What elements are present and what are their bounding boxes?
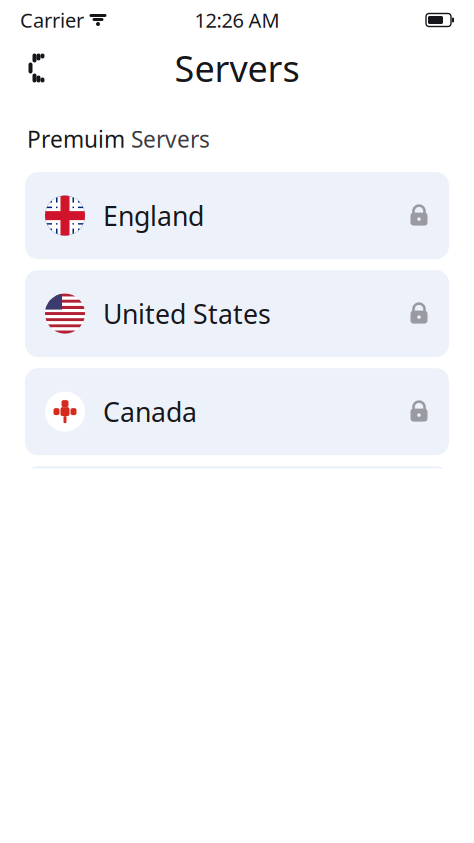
- button[interactable]: United States: [25, 270, 449, 357]
- staticText: Servers: [174, 44, 299, 92]
- staticText: Carrier: [20, 7, 84, 33]
- staticText: Servers: [131, 124, 210, 154]
- staticText: Canada: [103, 394, 197, 429]
- staticText: United States: [103, 296, 271, 331]
- button[interactable]: England: [25, 172, 449, 259]
- staticText: 12:26 AM: [194, 7, 279, 33]
- staticText: England: [103, 198, 204, 233]
- staticText: Premuim: [27, 124, 125, 154]
- button[interactable]: Canada: [25, 368, 449, 455]
- button[interactable]: Back: [18, 45, 55, 90]
